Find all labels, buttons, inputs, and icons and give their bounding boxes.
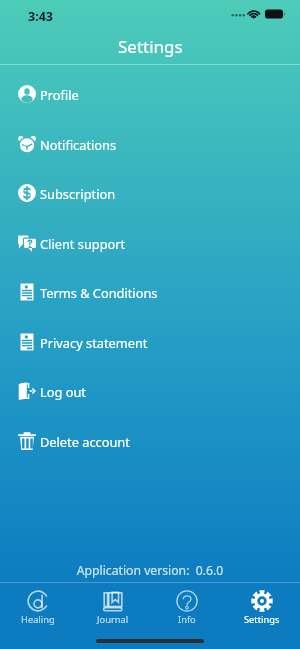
staticText: Privacy statement <box>40 334 148 351</box>
staticText: Log out <box>40 383 86 400</box>
staticText: Profile <box>40 86 79 103</box>
button[interactable]: Notifications <box>0 119 300 169</box>
staticText: Info <box>178 613 196 626</box>
button[interactable]: Settings <box>226 585 298 626</box>
button[interactable]: Profile <box>0 69 300 119</box>
button[interactable]: Log out <box>0 366 300 416</box>
staticText: Notifications <box>40 136 117 153</box>
staticText: 3:43 <box>28 8 53 25</box>
staticText: Subscription <box>40 185 116 202</box>
staticText: Application version: 0.6.0 <box>0 562 300 579</box>
staticText: Terms & Conditions <box>40 284 158 301</box>
button[interactable]: Terms & Conditions <box>0 267 300 317</box>
button[interactable]: Subscription <box>0 168 300 218</box>
staticText: Settings <box>244 613 280 626</box>
button[interactable]: Healing <box>2 585 74 626</box>
staticText: Client support <box>40 235 126 252</box>
staticText: Delete account <box>40 433 130 450</box>
button[interactable]: Journal <box>77 585 149 626</box>
button[interactable]: Client support <box>0 218 300 268</box>
staticText: Settings <box>118 35 183 58</box>
button[interactable]: Privacy statement <box>0 317 300 367</box>
staticText: Journal <box>97 613 129 626</box>
staticText: Healing <box>21 613 55 626</box>
button[interactable]: Delete account <box>0 416 300 466</box>
button[interactable]: Info <box>151 585 223 626</box>
